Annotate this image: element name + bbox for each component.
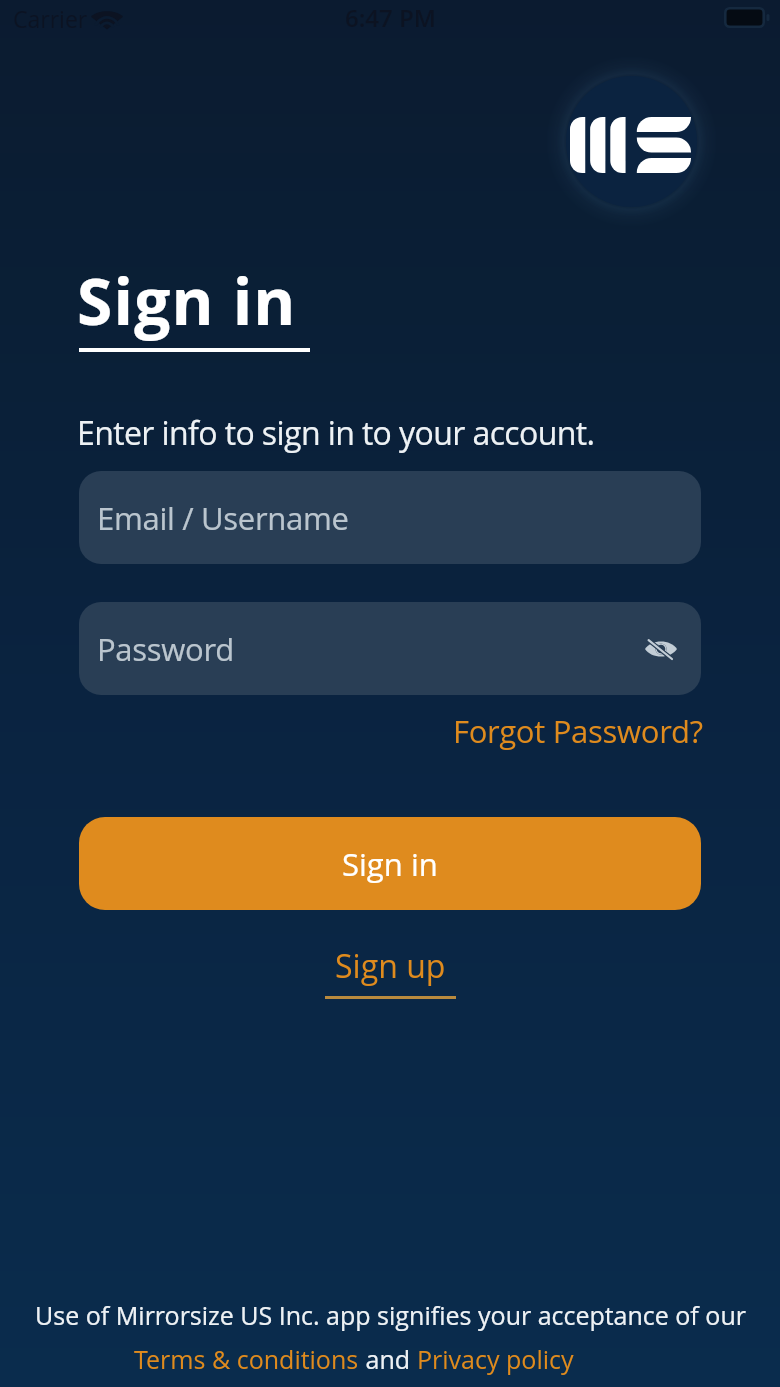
staticText: Terms & conditions	[134, 1342, 359, 1376]
button[interactable]: Terms & conditions	[134, 1342, 359, 1376]
staticText: Sign up	[335, 944, 446, 988]
staticText: 6:47 PM	[345, 1, 436, 34]
button[interactable]: Forgot Password?	[453, 710, 703, 752]
staticText: Password	[97, 628, 234, 670]
staticText: and	[359, 1342, 417, 1376]
staticText: Email / Username	[97, 497, 349, 539]
staticText: Use of Mirrorsize US Inc. app signifies …	[35, 1298, 746, 1332]
button[interactable]: Privacy policy	[417, 1342, 574, 1376]
button[interactable]: Email / Username	[79, 471, 701, 564]
staticText: Carrier	[13, 3, 88, 34]
button[interactable]: Sign up	[325, 944, 456, 999]
staticText: Enter info to sign in to your account.	[77, 411, 595, 455]
staticText: Privacy policy	[417, 1342, 574, 1376]
button[interactable]: Show password	[637, 625, 685, 673]
staticText: Sign in	[77, 257, 297, 344]
button[interactable]: Sign in	[79, 817, 701, 910]
staticText: Forgot Password?	[453, 710, 703, 752]
button[interactable]: Password	[79, 602, 701, 695]
staticText: Sign in	[342, 843, 438, 885]
